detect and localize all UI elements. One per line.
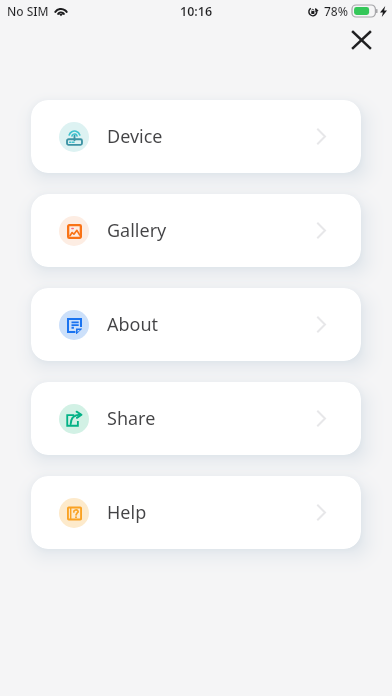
button[interactable]: Gallery xyxy=(31,194,361,267)
button[interactable]: About xyxy=(31,288,361,361)
button[interactable]: Help xyxy=(31,476,361,549)
staticText: Gallery xyxy=(107,218,167,243)
staticText: Help xyxy=(107,500,147,525)
staticText: Device xyxy=(107,124,163,149)
button[interactable]: Close xyxy=(344,23,378,57)
button[interactable]: Device xyxy=(31,100,361,173)
staticText: 78% xyxy=(324,3,348,19)
staticText: 10:16 xyxy=(180,3,213,20)
button[interactable]: Share xyxy=(31,382,361,455)
staticText: No SIM xyxy=(7,3,49,19)
staticText: Share xyxy=(107,406,156,431)
staticText: About xyxy=(107,312,159,337)
